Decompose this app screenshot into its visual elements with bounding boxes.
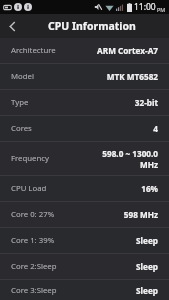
staticText: Core 2:Sleep <box>11 261 57 272</box>
button[interactable]: Model <box>0 64 169 89</box>
button[interactable]: Type <box>0 90 169 115</box>
button[interactable]: Core 3:Sleep <box>0 280 169 300</box>
staticText: Frequency <box>11 153 50 164</box>
staticText: 4 <box>153 123 158 134</box>
staticText: 11:00 <box>134 1 156 13</box>
staticText: MHz <box>139 159 158 170</box>
button[interactable]: Cores <box>0 116 169 141</box>
staticText: CPU Load <box>11 183 47 194</box>
staticText: Model <box>11 71 34 82</box>
staticText: PM <box>157 6 166 13</box>
button[interactable]: Architecture <box>0 38 169 63</box>
button[interactable]: Core 1: 39% <box>0 228 169 253</box>
button[interactable]: Core 0: 27% <box>0 202 169 227</box>
staticText: Architecture <box>11 45 56 56</box>
staticText: Core 3:Sleep <box>11 285 57 296</box>
button[interactable]: Frequency <box>0 142 169 175</box>
staticText: Sleep <box>136 285 158 296</box>
staticText: 598.0 ~ 1300.0 <box>102 148 158 159</box>
staticText: 32-bit <box>134 97 158 108</box>
button[interactable]: Back <box>0 14 24 38</box>
staticText: ARM Cortex-A7 <box>97 45 158 56</box>
staticText: Cores <box>11 123 32 134</box>
staticText: 16% <box>141 183 158 194</box>
staticText: Core 0: 27% <box>11 209 55 220</box>
staticText: MTK MT6582 <box>106 71 158 82</box>
staticText: Sleep <box>136 235 158 246</box>
staticText: 598 MHz <box>123 209 158 220</box>
staticText: CPU Information <box>48 19 136 33</box>
button[interactable]: Core 2:Sleep <box>0 254 169 279</box>
button[interactable]: CPU Load <box>0 176 169 201</box>
staticText: Type <box>11 97 29 108</box>
staticText: Sleep <box>136 261 158 272</box>
staticText: Core 1: 39% <box>11 235 55 246</box>
